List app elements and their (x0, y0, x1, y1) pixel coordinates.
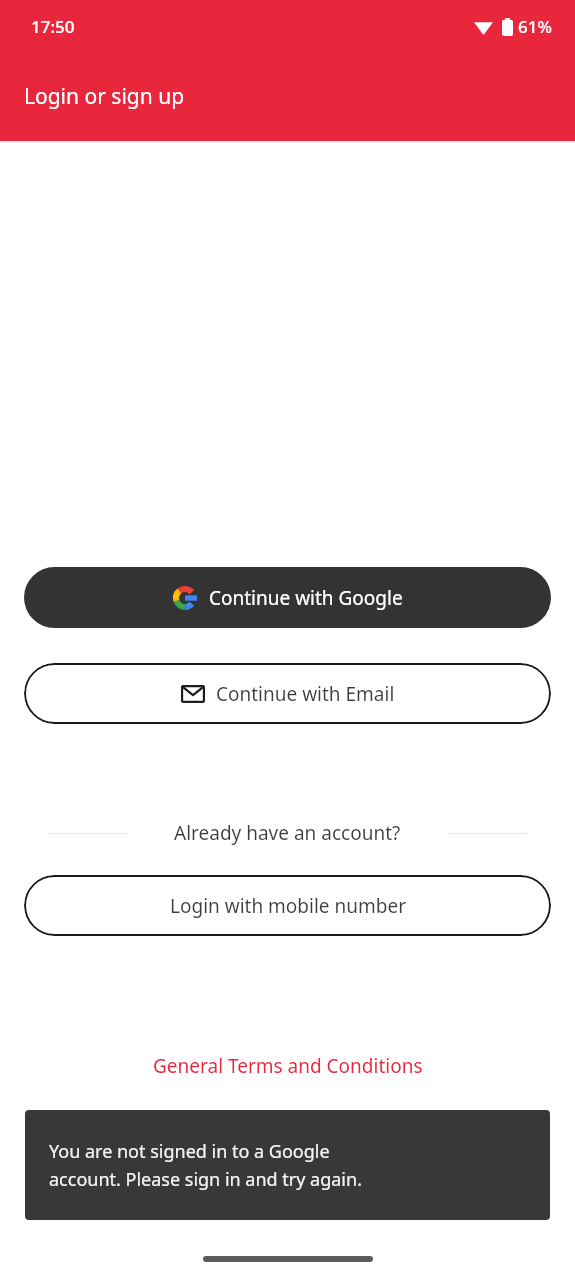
staticText: Already have an account? (174, 820, 401, 846)
staticText: Continue with Google (209, 585, 403, 611)
button[interactable]: Continue with Email (24, 663, 551, 724)
staticText: Continue with Email (216, 681, 395, 707)
staticText: Login or sign up (24, 82, 185, 111)
staticText: 61% (518, 15, 552, 38)
button[interactable]: Continue with Google (24, 567, 551, 628)
staticText: Login with mobile number (170, 893, 406, 919)
button[interactable]: Login with mobile number (24, 875, 551, 936)
button[interactable]: General Terms and Conditions (149, 1049, 427, 1083)
staticText: You are not signed in to a Google accoun… (49, 1139, 362, 1191)
other: Home gesture handle (203, 1256, 373, 1262)
staticText: 17:50 (31, 15, 75, 38)
button[interactable]: You are not signed in to a Google accoun… (25, 1110, 550, 1220)
